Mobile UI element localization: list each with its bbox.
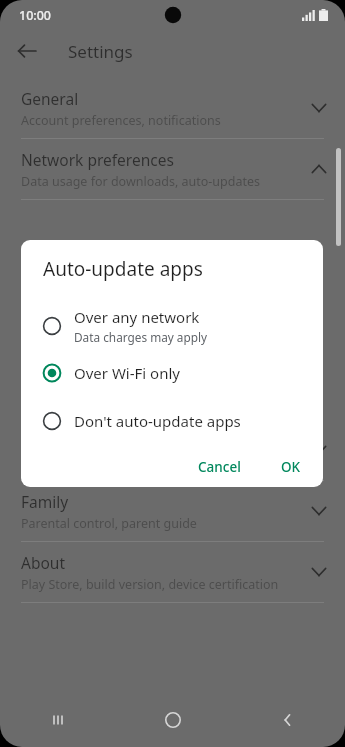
staticText: Play Store, build version, device certif… — [21, 576, 279, 593]
button[interactable]: Cancel — [190, 452, 249, 482]
staticText: Over any network — [74, 307, 200, 327]
staticText: Cancel — [198, 458, 241, 476]
button[interactable]: OK — [273, 452, 309, 482]
button[interactable]: Authentication — [0, 420, 345, 481]
button[interactable]: Family — [0, 481, 345, 542]
staticText: Auto-update apps — [43, 256, 203, 282]
staticText: Parental control, parent guide — [21, 515, 197, 532]
staticText: General — [21, 88, 79, 109]
staticText: 10:00 — [19, 7, 52, 24]
staticText: Data usage for downloads, auto-updates — [21, 173, 261, 190]
staticText: Account preferences, notifications — [21, 112, 221, 129]
staticText: Over Wi-Fi only — [74, 363, 180, 383]
staticText: Data charges may apply — [74, 329, 208, 345]
button[interactable]: Back — [13, 37, 41, 65]
staticText: Family — [21, 491, 69, 512]
button[interactable]: General — [0, 78, 345, 139]
button[interactable]: Don't auto-update apps — [21, 400, 323, 442]
button[interactable]: Over any network — [21, 302, 323, 350]
button[interactable]: Over Wi-Fi only — [21, 352, 323, 394]
button[interactable]: About — [0, 542, 345, 603]
staticText: About — [21, 552, 65, 573]
staticText: Settings — [68, 40, 133, 63]
button[interactable]: Network preferences — [0, 139, 345, 200]
staticText: Network preferences — [21, 149, 174, 170]
button[interactable]: Home — [115, 693, 230, 747]
button[interactable]: Recents — [0, 693, 115, 747]
button[interactable]: Back — [230, 693, 345, 747]
staticText: Don't auto-update apps — [74, 411, 241, 431]
staticText: OK — [281, 458, 301, 476]
staticText: Fingerprint, purchase authentication — [21, 454, 237, 471]
